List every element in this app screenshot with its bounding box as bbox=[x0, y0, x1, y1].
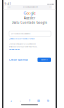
button[interactable]: aA bbox=[7, 5, 52, 9]
staticText: ¿Olvidaste tu correo electrónico? bbox=[9, 38, 35, 40]
staticText: e bbox=[33, 10, 35, 15]
staticText: Más información bbox=[9, 49, 20, 50]
staticText: o bbox=[26, 10, 28, 15]
staticText: ¿No es tu computadora? Usa el modo de bbox=[9, 43, 36, 45]
staticText: accounts.google.com bbox=[22, 6, 37, 8]
staticText: ↑ bbox=[28, 99, 30, 102]
staticText: ‹ bbox=[11, 98, 12, 103]
button[interactable]: Back bbox=[6, 98, 16, 103]
staticText: › bbox=[20, 98, 21, 103]
button[interactable]: Share bbox=[25, 98, 34, 103]
staticText: ▤ bbox=[37, 99, 40, 102]
staticText: ⧉ bbox=[47, 99, 49, 102]
button[interactable]: Bookmarks bbox=[34, 98, 43, 103]
staticText: g bbox=[30, 10, 32, 15]
button[interactable]: Crear cuenta bbox=[9, 58, 28, 61]
staticText: Acceder bbox=[24, 16, 35, 20]
staticText: l bbox=[32, 10, 33, 15]
staticText: o bbox=[28, 10, 30, 15]
staticText: Siguiente bbox=[41, 59, 48, 61]
button[interactable]: Más información bbox=[9, 49, 20, 50]
staticText: Crear cuenta bbox=[9, 58, 28, 61]
staticText: 9:41 bbox=[4, 2, 11, 6]
staticText: Usa tu Cuenta de Google bbox=[11, 21, 47, 24]
button[interactable]: Siguiente bbox=[37, 58, 51, 62]
staticText: Correo electrónico o teléfono bbox=[10, 33, 30, 35]
button[interactable]: ¿Olvidaste tu correo electrónico? bbox=[9, 38, 35, 40]
button[interactable]: Tabs bbox=[43, 98, 52, 103]
staticText: aA bbox=[8, 6, 10, 8]
staticText: G bbox=[23, 10, 26, 15]
staticText: Invitado para navegar de forma privada. bbox=[9, 46, 37, 48]
